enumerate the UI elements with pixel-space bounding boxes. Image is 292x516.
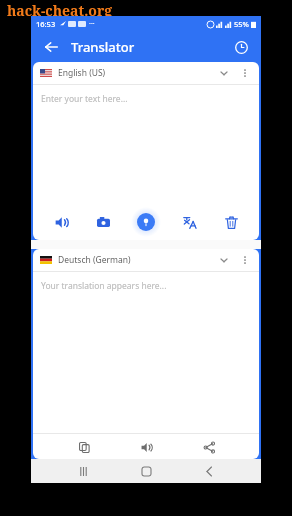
button[interactable]: Back xyxy=(198,460,220,482)
staticText: Your translation appears here... xyxy=(41,280,167,292)
button[interactable]: Speak xyxy=(46,207,76,237)
staticText: 55% xyxy=(234,19,249,29)
button[interactable]: Copy xyxy=(72,435,96,459)
button[interactable]: Share xyxy=(197,435,221,459)
button[interactable]: Home xyxy=(135,460,157,482)
button[interactable]: Camera xyxy=(88,207,118,237)
staticText: Enter your text here... xyxy=(41,93,128,105)
button[interactable]: Voice input xyxy=(131,207,161,237)
button[interactable]: More options xyxy=(238,253,252,267)
staticText: Translator xyxy=(71,38,135,56)
button[interactable]: Speak translation xyxy=(134,435,158,459)
staticText: Deutsch (German) xyxy=(58,254,131,266)
button[interactable]: More options xyxy=(238,66,252,80)
button[interactable]: Recents xyxy=(72,460,94,482)
button[interactable]: History xyxy=(229,35,253,59)
staticText: English (US) xyxy=(58,67,106,79)
button[interactable]: English (US) xyxy=(33,62,259,84)
staticText: hack-cheat.org xyxy=(7,1,113,20)
staticText: 16:53 xyxy=(36,19,56,29)
button[interactable]: Clear xyxy=(216,207,246,237)
staticText: ··· xyxy=(89,19,95,29)
button[interactable]: Translate xyxy=(174,207,204,237)
button[interactable]: Deutsch (German) xyxy=(33,249,259,271)
button[interactable]: Back xyxy=(39,35,63,59)
